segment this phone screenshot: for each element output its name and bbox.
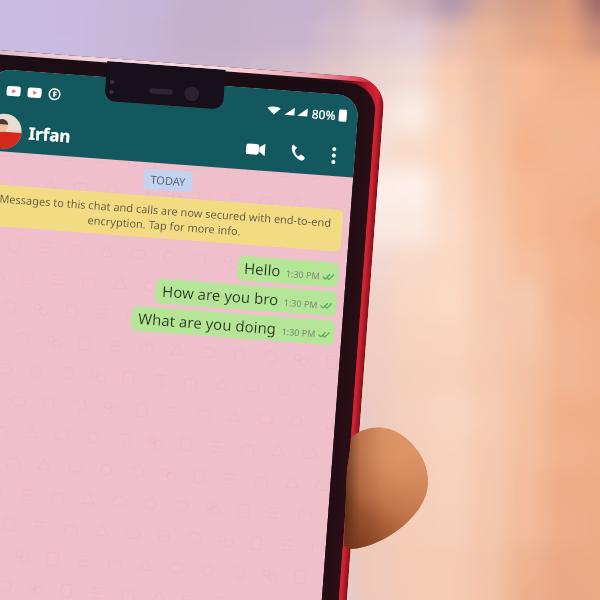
staticText: 1:30 PM	[283, 296, 318, 310]
button[interactable]: Hello	[236, 255, 340, 288]
button[interactable]: Irfan	[28, 121, 72, 148]
staticText: Hello	[243, 258, 282, 280]
staticText: 1:30 PM	[281, 325, 316, 339]
staticText: What are you doing	[137, 308, 278, 338]
staticText: Messages to this chat and calls are now …	[0, 190, 336, 245]
button[interactable]: Messages to this chat and calls are now …	[0, 184, 344, 252]
button[interactable]: Video call	[242, 136, 268, 162]
button[interactable]: More options	[324, 145, 343, 165]
staticText: 80%	[311, 105, 336, 123]
button[interactable]: What are you doing	[130, 306, 336, 346]
button[interactable]: How are you bro	[154, 278, 338, 317]
button[interactable]: Contact photo	[0, 112, 23, 150]
staticText: TODAY	[150, 172, 186, 189]
button[interactable]: TODAY	[143, 168, 193, 193]
staticText: 1:30 PM	[285, 267, 320, 281]
staticText: How are you bro	[162, 281, 280, 309]
button[interactable]: Voice call	[286, 141, 310, 164]
